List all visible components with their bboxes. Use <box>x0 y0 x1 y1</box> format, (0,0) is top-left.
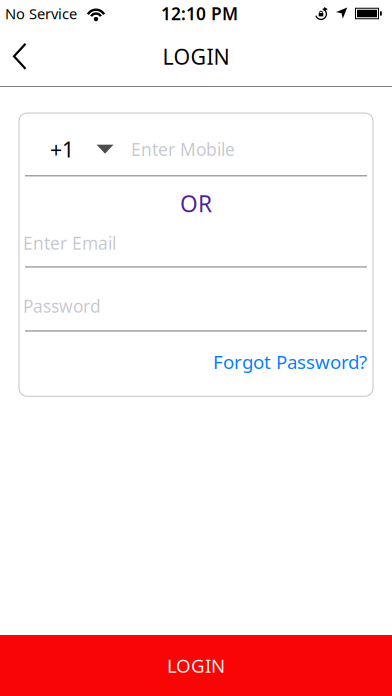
staticText: OR <box>180 188 212 218</box>
button[interactable]: Enter Mobile <box>114 138 235 161</box>
button[interactable]: Enter Email <box>19 231 116 254</box>
button[interactable]: Password <box>19 294 101 317</box>
button[interactable]: Back <box>0 43 38 70</box>
staticText: Password <box>23 294 101 317</box>
staticText: 12:10 PM <box>161 2 238 25</box>
staticText: Forgot Password? <box>213 349 367 374</box>
staticText: Enter Mobile <box>131 138 235 161</box>
staticText: Enter Email <box>23 231 116 254</box>
button[interactable]: LOGIN <box>0 635 392 696</box>
button[interactable]: Select country code <box>74 144 114 154</box>
staticText: LOGIN <box>167 653 225 678</box>
staticText: +1 <box>50 135 74 163</box>
button[interactable]: Forgot Password? <box>213 349 367 374</box>
staticText: No Service <box>5 4 77 23</box>
staticText: LOGIN <box>162 42 229 71</box>
